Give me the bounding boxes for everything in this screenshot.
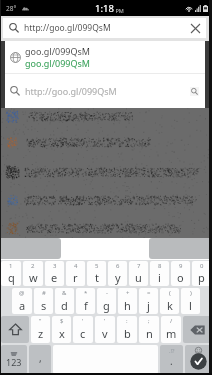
button[interactable]: $ [52,316,71,343]
button[interactable]: & [55,288,74,314]
staticText: e [51,270,58,285]
staticText: 123 [6,356,22,368]
button[interactable]: 2 [23,261,43,286]
staticText: : [126,317,128,325]
button[interactable]: 7 [129,261,148,286]
button[interactable]: Backspace [183,316,211,343]
button[interactable]: 1 [1,261,21,286]
button[interactable]: / [161,316,181,343]
staticText: i [158,270,161,285]
button[interactable]: 8 [150,261,169,286]
staticText: 1:18 [95,2,114,15]
staticText: z [38,326,44,341]
button[interactable] [53,345,158,374]
staticText: * [84,289,88,297]
button[interactable]: 9 [171,261,190,286]
staticText: x [59,326,65,341]
button[interactable]: = [139,288,158,314]
button[interactable]: goo.gl/099QsM [5,41,205,73]
button[interactable]: ( [160,288,179,314]
button[interactable]: 0 [192,261,211,286]
button[interactable]: - [97,288,116,314]
staticText: = [147,289,151,297]
staticText: . [170,354,173,368]
other: Go [185,345,211,374]
staticText: http://goo.gl/099QsM [25,85,183,97]
staticText: ‘ [82,317,84,325]
staticText: r [73,270,78,285]
button[interactable]: ‘ [73,316,93,343]
staticText: 8 [158,262,162,270]
other: Shift [9,323,22,336]
staticText: & [62,289,67,297]
button[interactable] [0,238,61,259]
button[interactable]: " [31,316,50,343]
button[interactable]: * [76,288,95,314]
staticText: ’ [104,317,106,325]
staticText: 3 [53,262,57,270]
staticText: f [84,298,88,313]
staticText: j [147,298,150,313]
button[interactable] [149,238,212,259]
staticText: v [102,326,108,341]
button[interactable]: Edit query [183,74,205,108]
staticText: 1 [9,262,13,270]
button[interactable]: 123 [1,345,27,374]
staticText: u [135,270,142,285]
staticText: $ [60,317,64,325]
staticText: ; [148,317,150,325]
staticText: s [41,298,47,313]
staticText: 4 [74,262,78,270]
button[interactable]: http://goo.gl/099QsM [3,18,206,38]
staticText: " [39,317,42,325]
staticText: @ [19,289,25,297]
button[interactable]: Clear [184,18,206,38]
button[interactable]: : [117,316,137,343]
button[interactable]: ) [181,288,200,314]
staticText: PM [114,7,124,14]
staticText: c [80,326,86,341]
button[interactable]: + [118,288,137,314]
button[interactable]: 4 [66,261,85,286]
staticText: l [189,298,192,313]
button[interactable]: Shift [1,316,29,343]
staticText: .!? [169,347,175,354]
staticText: 9 [179,262,183,270]
button[interactable]: Go [185,345,211,374]
staticText: a [19,298,26,313]
staticText: 0 [200,262,204,270]
button[interactable]: http://goo.gl/099QsM [5,74,205,108]
staticText: t [95,270,99,285]
staticText: o [177,270,184,285]
button[interactable]: .!? [160,345,183,374]
staticText: 5 [95,262,99,270]
staticText: d [61,298,68,313]
button[interactable]: ’ [95,316,115,343]
button[interactable]: 3 [45,261,64,286]
staticText: y [115,270,121,285]
other: Backspace [190,325,205,335]
button[interactable]: , [29,345,51,374]
staticText: http://goo.gl/099QsM [24,22,184,34]
staticText: 2 [31,262,35,270]
staticText: goo.gl/099QsM [25,57,90,69]
staticText: - [106,289,108,297]
button[interactable]: 6 [108,261,127,286]
staticText: g [103,298,110,313]
staticText: n [146,326,153,341]
button[interactable]: 5 [87,261,106,286]
button[interactable]: # [34,288,53,314]
staticText: b [124,326,131,341]
staticText: k [167,298,173,313]
button[interactable]: ; [139,316,159,343]
staticText: p [198,270,205,285]
staticText: 7 [137,262,141,270]
staticText: + [126,289,130,297]
staticText: m [166,326,177,341]
staticText: 28° [6,4,17,13]
staticText: ( [169,289,171,297]
staticText: / [170,317,173,325]
button[interactable]: @ [12,288,32,314]
staticText: q [8,270,15,285]
